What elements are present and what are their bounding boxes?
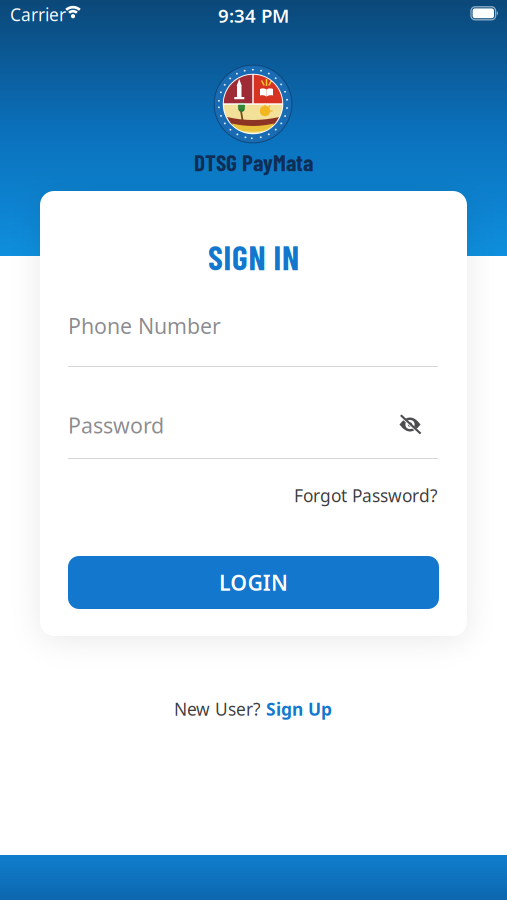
staticText: Password xyxy=(68,411,164,439)
button[interactable]: Password xyxy=(68,413,438,459)
staticText: LOGIN xyxy=(219,568,288,597)
button[interactable]: Phone Number xyxy=(68,315,438,367)
staticText: New User? xyxy=(174,697,261,720)
staticText: Phone Number xyxy=(68,311,221,340)
staticText: DTSG PayMata xyxy=(194,148,313,176)
button[interactable]: LOGIN xyxy=(68,556,439,609)
staticText: Carrier xyxy=(10,3,66,26)
button[interactable]: Show password xyxy=(399,415,421,434)
button[interactable]: Sign Up xyxy=(266,697,332,720)
staticText: Sign Up xyxy=(266,697,332,720)
staticText: 9:34 PM xyxy=(218,3,289,28)
staticText: Forgot Password? xyxy=(294,484,438,507)
staticText: SIGN IN xyxy=(208,237,299,277)
button[interactable]: Forgot Password? xyxy=(294,484,438,507)
